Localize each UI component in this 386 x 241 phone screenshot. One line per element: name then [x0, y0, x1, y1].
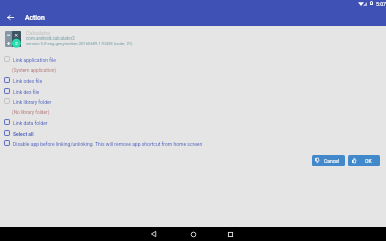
button[interactable]: Link application file [0, 54, 386, 65]
button[interactable]: Recents [219, 227, 242, 241]
button[interactable]: Back [142, 227, 165, 241]
staticText: Cancel [324, 158, 340, 164]
staticText: com.android.calculator2 [26, 36, 75, 41]
button[interactable]: Link data folder [0, 117, 386, 128]
staticText: version 5.0-eng.genymotion.20160689.1704… [26, 41, 133, 46]
staticText: Link application file [13, 57, 56, 63]
staticText: Select all [13, 131, 34, 137]
staticText: Action [25, 14, 45, 22]
button[interactable]: OK [348, 155, 380, 166]
button[interactable]: Cancel [312, 155, 345, 166]
staticText: Calculator [26, 30, 51, 36]
button[interactable]: Disable app before linking/unlinking. Th… [0, 138, 386, 149]
button[interactable]: Link odex file [0, 75, 386, 86]
staticText: OK [365, 158, 372, 164]
button[interactable]: Select all [0, 128, 386, 139]
staticText: Link odex file [13, 78, 43, 84]
staticText: 5:07 [376, 1, 386, 7]
staticText: Link data folder [13, 120, 48, 126]
staticText: (System application) [12, 68, 56, 74]
staticText: Link dex file [13, 89, 40, 95]
staticText: (No library folder) [12, 110, 50, 116]
button[interactable]: Back [1, 8, 19, 26]
button[interactable]: Link dex file [0, 86, 386, 97]
button[interactable]: Home [182, 227, 205, 241]
button[interactable]: Link library folder [0, 96, 386, 107]
staticText: Link library folder [13, 99, 52, 105]
staticText: Disable app before linking/unlinking. Th… [13, 141, 203, 147]
